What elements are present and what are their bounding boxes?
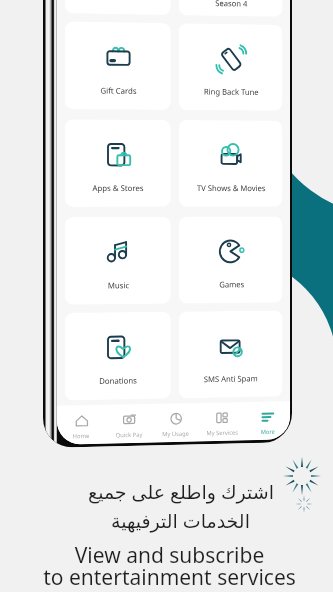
staticText: Donations bbox=[99, 374, 137, 386]
staticText: Music bbox=[108, 279, 129, 290]
button[interactable]: Ring Back Tune bbox=[179, 23, 283, 111]
staticText: Quick Pay bbox=[116, 431, 143, 439]
button[interactable]: Music bbox=[65, 217, 171, 305]
staticText: الخدمات الترفيهية bbox=[111, 508, 250, 534]
button[interactable]: Season 4 bbox=[179, 0, 283, 17]
button[interactable]: Games bbox=[179, 216, 283, 304]
staticText: View and subscribe to entertainment serv… bbox=[43, 541, 296, 591]
staticText: Gift Cards bbox=[100, 85, 137, 96]
button[interactable]: Quick Pay bbox=[105, 404, 152, 444]
staticText: My Usage bbox=[162, 430, 189, 438]
button[interactable]: Apps & Stores bbox=[65, 119, 171, 207]
staticText: Home bbox=[73, 432, 90, 440]
button[interactable]: Home bbox=[57, 405, 105, 445]
staticText: SMS Anti Spam bbox=[204, 372, 258, 384]
button[interactable]: Donations bbox=[65, 312, 171, 401]
staticText: Ring Back Tune bbox=[204, 86, 259, 97]
button[interactable]: My Usage bbox=[152, 403, 199, 442]
button[interactable]: Gift Cards bbox=[65, 21, 171, 110]
staticText: More bbox=[261, 428, 275, 436]
staticText: Games bbox=[219, 278, 245, 289]
button[interactable]: TV Shows & Movies bbox=[179, 120, 283, 207]
staticText: My Services bbox=[206, 429, 238, 437]
staticText: Season 4 bbox=[215, 0, 247, 9]
button[interactable]: More bbox=[245, 401, 290, 440]
staticText: اشترك واطلع على جميع bbox=[88, 479, 274, 505]
staticText: TV Shows & Movies bbox=[197, 182, 266, 193]
button[interactable]: My Services bbox=[199, 402, 245, 441]
staticText: Apps & Stores bbox=[92, 182, 144, 193]
button[interactable]: SMS Anti Spam bbox=[179, 310, 283, 398]
